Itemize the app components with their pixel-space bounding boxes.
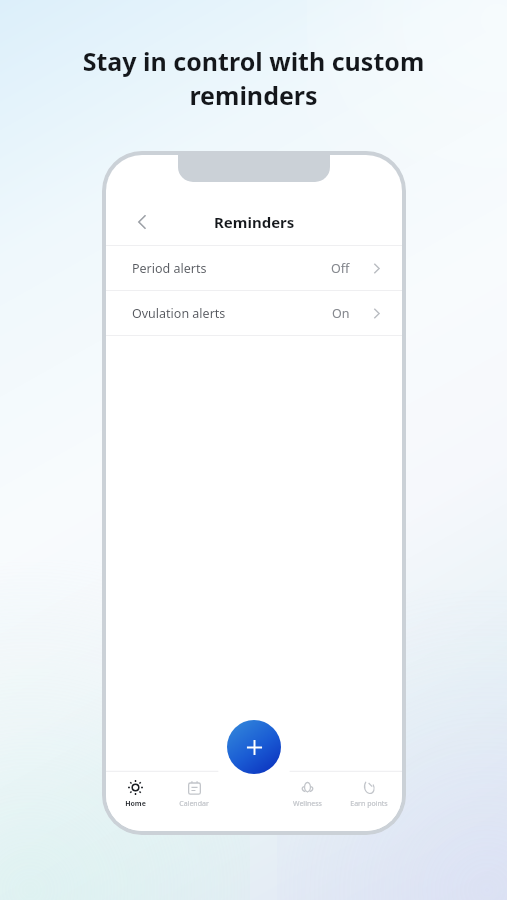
staticText: Period alerts [132,260,207,277]
staticText: Wellness [293,799,322,809]
staticText: Off [331,260,350,277]
staticText: Earn points [350,799,388,809]
button[interactable]: Earn points [336,780,402,809]
staticText: Ovulation alerts [132,305,226,322]
staticText: Stay in control with custom reminders [20,44,487,113]
staticText: Home [125,799,146,809]
staticText: On [332,305,350,322]
button[interactable]: Wellness [279,780,336,809]
staticText: Reminders [214,212,295,232]
staticText: Calendar [179,799,209,809]
button[interactable]: Period alerts [106,246,402,290]
button[interactable]: Home [106,780,164,809]
button[interactable]: Calendar [164,780,224,809]
button[interactable]: Ovulation alerts [106,291,402,335]
button[interactable]: Add reminder [227,720,281,774]
button[interactable]: Back [126,205,160,239]
